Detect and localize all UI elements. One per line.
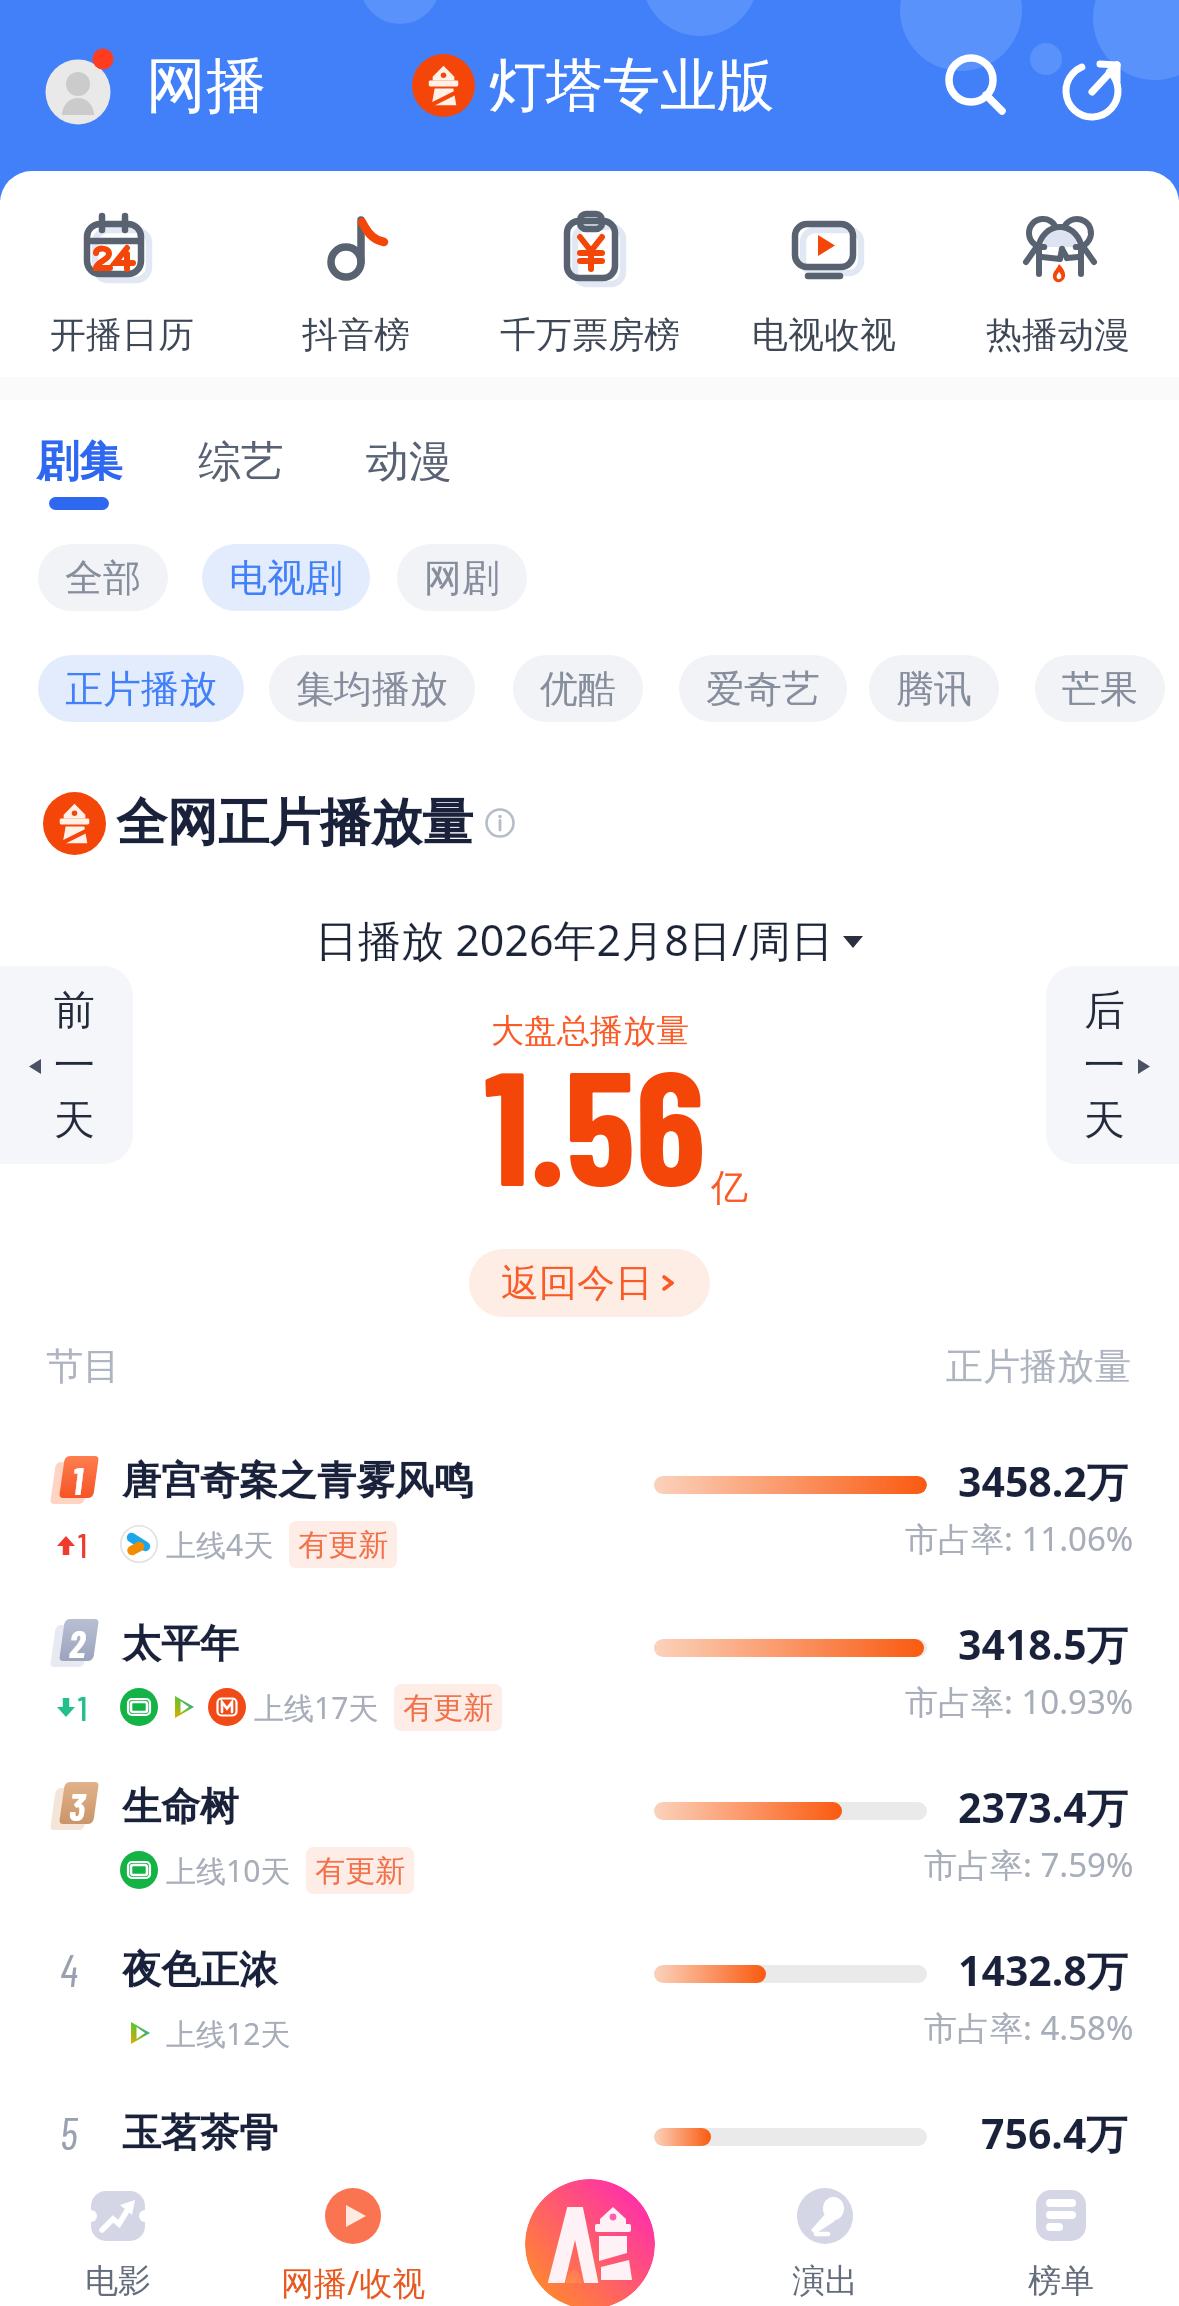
button[interactable]: 爱奇艺 bbox=[679, 655, 847, 722]
staticText: 5 bbox=[60, 2106, 78, 2159]
button[interactable]: 返回今日 bbox=[469, 1249, 710, 1317]
staticText: 腾讯 bbox=[896, 665, 972, 713]
button[interactable]: 3 bbox=[0, 1771, 1179, 1934]
button[interactable]: 演出 bbox=[707, 2158, 943, 2306]
staticText: 综艺 bbox=[198, 435, 284, 489]
button[interactable]: 热播动漫 bbox=[941, 214, 1175, 357]
staticText: 灯塔专业版 bbox=[489, 50, 774, 122]
staticText: 节目 bbox=[46, 1343, 120, 1390]
staticText: 芒果 bbox=[1062, 665, 1138, 713]
button[interactable]: 综艺 bbox=[198, 435, 284, 510]
staticText: 上线12天 bbox=[166, 2013, 291, 2054]
staticText: 演出 bbox=[792, 2260, 858, 2302]
staticText: 亿 bbox=[711, 1164, 748, 1211]
staticText: 生命树 bbox=[122, 1782, 239, 1831]
button[interactable]: 千万票房榜 bbox=[473, 214, 707, 357]
staticText: 集均播放 bbox=[296, 665, 448, 713]
staticText: 热播动漫 bbox=[986, 312, 1130, 357]
staticText: 大盘总播放量 bbox=[491, 1010, 689, 1052]
button[interactable]: 日播放 2026年2月8日/周日 bbox=[315, 910, 864, 969]
staticText: 电视剧 bbox=[229, 554, 343, 602]
staticText: 正片播放量 bbox=[946, 1343, 1131, 1390]
staticText: 玉茗茶骨 bbox=[122, 2108, 278, 2157]
staticText: 网播/收视 bbox=[281, 2260, 426, 2305]
staticText: 开播日历 bbox=[50, 312, 194, 357]
button[interactable]: Profile bbox=[44, 45, 126, 127]
button[interactable]: 前 一 天 bbox=[0, 966, 133, 1164]
staticText: 市占率: 7.59% bbox=[924, 1842, 1134, 1887]
staticText: 前 一 天 bbox=[54, 985, 95, 1146]
staticText: 后 一 天 bbox=[1084, 985, 1125, 1146]
staticText: 太平年 bbox=[122, 1619, 239, 1668]
staticText: 有更新 bbox=[298, 1526, 388, 1564]
button[interactable]: 榜单 bbox=[943, 2158, 1179, 2306]
staticText: 优酷 bbox=[540, 665, 616, 713]
button[interactable]: 全部 bbox=[38, 544, 168, 611]
staticText: 正片播放 bbox=[65, 665, 217, 713]
button[interactable]: 剧集 bbox=[36, 435, 122, 510]
staticText: 夜色正浓 bbox=[122, 1945, 278, 1994]
button[interactable]: 后 一 天 bbox=[1046, 966, 1179, 1164]
staticText: 全部 bbox=[65, 554, 141, 602]
staticText: 3 bbox=[69, 1783, 86, 1829]
staticText: 2373.4万 bbox=[958, 1779, 1128, 1835]
staticText: 全网正片播放量 bbox=[116, 791, 473, 855]
staticText: 市占率: 4.58% bbox=[924, 2005, 1134, 2050]
staticText: 3458.2万 bbox=[958, 1453, 1128, 1509]
staticText: 1432.8万 bbox=[958, 1942, 1128, 1998]
button[interactable]: 网播/收视 bbox=[235, 2158, 471, 2306]
button[interactable]: 抖音榜 bbox=[239, 214, 473, 357]
button[interactable]: 芒果 bbox=[1035, 655, 1165, 722]
button[interactable]: 网剧 bbox=[397, 544, 527, 611]
staticText: 上线10天 bbox=[166, 1850, 291, 1891]
staticText: 上线4天 bbox=[166, 1524, 274, 1565]
staticText: 电影 bbox=[85, 2260, 151, 2302]
staticText: 有更新 bbox=[403, 1689, 493, 1727]
button[interactable]: 2 bbox=[0, 1608, 1179, 1771]
button[interactable]: 腾讯 bbox=[869, 655, 999, 722]
staticText: 榜单 bbox=[1028, 2260, 1094, 2302]
button[interactable]: 4 bbox=[0, 1934, 1179, 2097]
staticText: 市占率: 2.42% bbox=[924, 2168, 1134, 2213]
staticText: 剧集 bbox=[36, 435, 122, 489]
button[interactable]: Share bbox=[1054, 46, 1134, 126]
staticText: 市占率: 10.93% bbox=[905, 1679, 1134, 1724]
staticText: 动漫 bbox=[366, 435, 452, 489]
staticText: 2 bbox=[69, 1620, 86, 1666]
staticText: 网剧 bbox=[424, 554, 500, 602]
button[interactable]: Info bbox=[485, 808, 515, 838]
button[interactable]: Search bbox=[937, 46, 1017, 126]
button[interactable]: 优酷 bbox=[513, 655, 643, 722]
button[interactable]: 开播日历 bbox=[4, 214, 239, 357]
staticText: 千万票房榜 bbox=[500, 312, 680, 357]
staticText: 上线17天 bbox=[254, 1687, 379, 1728]
staticText: 4 bbox=[60, 1943, 78, 1996]
button[interactable]: 1 bbox=[0, 1445, 1179, 1608]
staticText: 爱奇艺 bbox=[706, 665, 820, 713]
staticText: 唐宫奇案之青雾风鸣 bbox=[122, 1456, 473, 1505]
button[interactable]: 正片播放 bbox=[38, 655, 244, 722]
staticText: 1 bbox=[78, 1524, 88, 1565]
staticText: 抖音榜 bbox=[302, 312, 410, 357]
staticText: 3418.5万 bbox=[958, 1616, 1128, 1672]
staticText: 1 bbox=[72, 1457, 83, 1503]
button[interactable]: 电影 bbox=[0, 2158, 235, 2306]
staticText: 有更新 bbox=[315, 1852, 405, 1890]
staticText: 756.4万 bbox=[981, 2105, 1128, 2161]
staticText: 返回今日 bbox=[501, 1259, 653, 1307]
button[interactable]: 电视剧 bbox=[202, 544, 370, 611]
staticText: 市占率: 11.06% bbox=[905, 1516, 1134, 1561]
staticText: 电视收视 bbox=[752, 312, 896, 357]
button[interactable]: 集均播放 bbox=[269, 655, 475, 722]
staticText: 网播 bbox=[146, 48, 266, 124]
button[interactable]: 动漫 bbox=[366, 435, 452, 510]
button[interactable]: AI assistant bbox=[525, 2179, 655, 2306]
staticText: 日播放 2026年2月8日/周日 bbox=[315, 910, 834, 969]
staticText: 1.56 bbox=[484, 1026, 706, 1218]
button[interactable]: 5 bbox=[0, 2097, 1179, 2260]
button[interactable]: 电视收视 bbox=[707, 214, 941, 357]
staticText: 1 bbox=[78, 1687, 88, 1728]
